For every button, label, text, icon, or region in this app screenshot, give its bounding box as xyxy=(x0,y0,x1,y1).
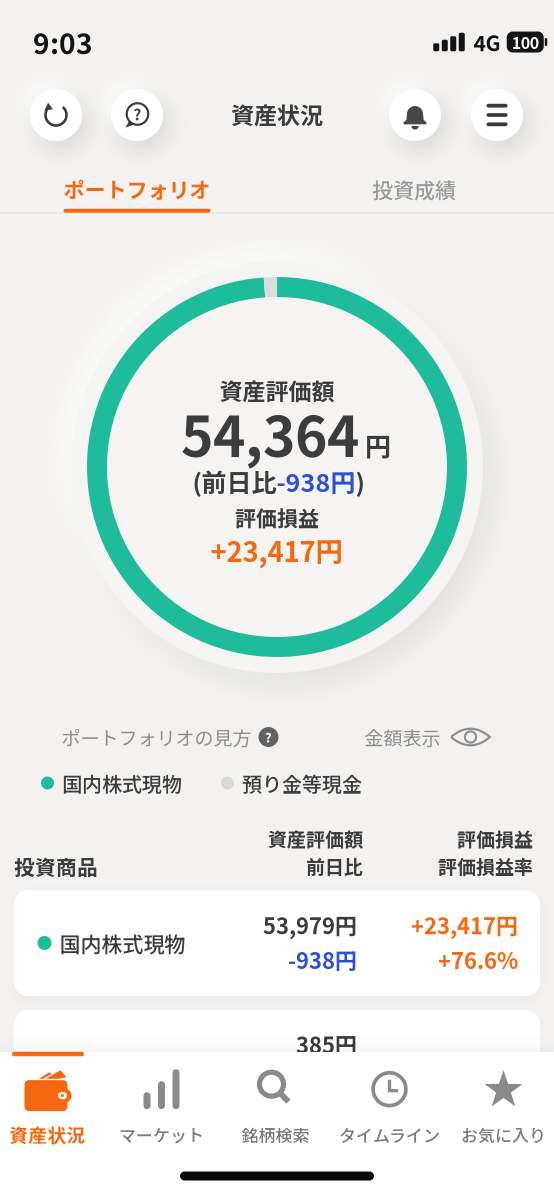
staticText: +23,417円 xyxy=(411,909,518,940)
button[interactable]: 資産状況 xyxy=(0,1061,102,1153)
staticText: 前日比 xyxy=(306,852,363,879)
button[interactable] xyxy=(471,89,523,141)
staticText: 資産状況 xyxy=(9,1121,85,1148)
staticText: ) xyxy=(355,463,364,499)
button[interactable]: 銘柄検索 xyxy=(220,1061,330,1153)
staticText: タイムライン xyxy=(339,1122,440,1147)
staticText: 評価損益率 xyxy=(438,852,533,879)
staticText: お気に入り xyxy=(461,1122,546,1147)
button[interactable]: 385円 xyxy=(14,1010,540,1110)
button[interactable]: ポートフォリオの見方 xyxy=(61,723,278,751)
staticText: 金額表示 xyxy=(364,723,440,751)
staticText: -938円 xyxy=(288,943,357,975)
staticText: 54,364 xyxy=(181,393,359,472)
staticText: マーケット xyxy=(119,1122,204,1147)
button[interactable]: タイムライン xyxy=(334,1061,444,1153)
staticText: (前日比 xyxy=(192,463,276,499)
staticText: 国内株式現物 xyxy=(62,768,182,797)
staticText: ポートフォリオ xyxy=(63,173,210,204)
button[interactable]: マーケット xyxy=(106,1061,216,1153)
staticText: 投資商品 xyxy=(14,851,98,881)
staticText: -938円 xyxy=(276,463,355,499)
staticText: +23,417円 xyxy=(210,530,343,570)
staticText: 資産評価額 xyxy=(219,373,334,407)
staticText: 資産状況 xyxy=(231,97,323,131)
staticText: 100 xyxy=(512,30,539,54)
staticText: 9:03 xyxy=(33,22,93,62)
staticText: ? xyxy=(133,103,141,125)
staticText: +76.6% xyxy=(438,943,518,975)
staticText: ? xyxy=(265,728,272,746)
button[interactable]: 国内株式現物 xyxy=(14,890,540,996)
staticText: 評価損益 xyxy=(457,824,533,852)
staticText: 国内株式現物 xyxy=(59,928,185,958)
button[interactable] xyxy=(389,89,441,141)
staticText: 385円 xyxy=(296,1028,357,1060)
staticText: 銘柄検索 xyxy=(241,1122,309,1147)
staticText: 53,979円 xyxy=(263,909,357,940)
button[interactable]: ポートフォリオ xyxy=(63,173,210,213)
staticText: 預り金等現金 xyxy=(242,768,362,797)
button[interactable]: 金額表示 xyxy=(364,723,491,751)
button[interactable] xyxy=(30,89,82,141)
staticText: 評価損益 xyxy=(235,502,319,532)
staticText: 円 xyxy=(365,426,391,464)
staticText: 資産評価額 xyxy=(268,824,363,852)
button[interactable]: 投資成績 xyxy=(324,169,504,209)
staticText: 4G xyxy=(473,27,500,57)
button[interactable]: お気に入り xyxy=(448,1061,554,1153)
staticText: ポートフォリオの見方 xyxy=(61,723,251,751)
staticText: 投資成績 xyxy=(372,174,456,204)
button[interactable]: ? xyxy=(111,89,163,141)
